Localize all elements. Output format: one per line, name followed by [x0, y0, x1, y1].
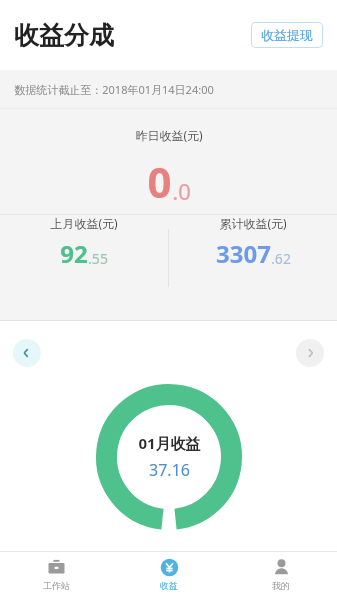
staticText: .55 [88, 249, 108, 268]
staticText: 收益 [160, 580, 178, 591]
staticText: 收益提现 [261, 27, 313, 43]
button[interactable]: 收益 [113, 552, 225, 591]
button[interactable]: Next month [296, 339, 324, 367]
staticText: 我的 [272, 580, 290, 591]
button[interactable]: 收益提现 [251, 22, 323, 48]
staticText: .62 [271, 249, 291, 268]
staticText: 0 [147, 153, 172, 210]
staticText: .0 [172, 176, 191, 206]
staticText: 37.16 [149, 459, 190, 481]
button[interactable]: 工作站 [0, 552, 113, 591]
staticText: 01月收益 [138, 433, 201, 453]
staticText: 累计收益(元) [219, 215, 287, 231]
button[interactable]: 01月收益 [96, 384, 242, 530]
button[interactable]: 上月收益(元) [0, 215, 168, 270]
staticText: 工作站 [43, 580, 70, 591]
button[interactable]: 我的 [225, 552, 337, 591]
staticText: 3307 [216, 237, 271, 270]
staticText: 上月收益(元) [50, 215, 118, 231]
button[interactable]: Previous month [13, 339, 41, 367]
button[interactable]: 累计收益(元) [169, 215, 337, 270]
staticText: 昨日收益(元) [135, 127, 203, 143]
staticText: 92 [60, 237, 88, 270]
staticText: 收益分成 [14, 20, 114, 51]
staticText: 数据统计截止至：2018年01月14日24:00 [14, 82, 214, 97]
